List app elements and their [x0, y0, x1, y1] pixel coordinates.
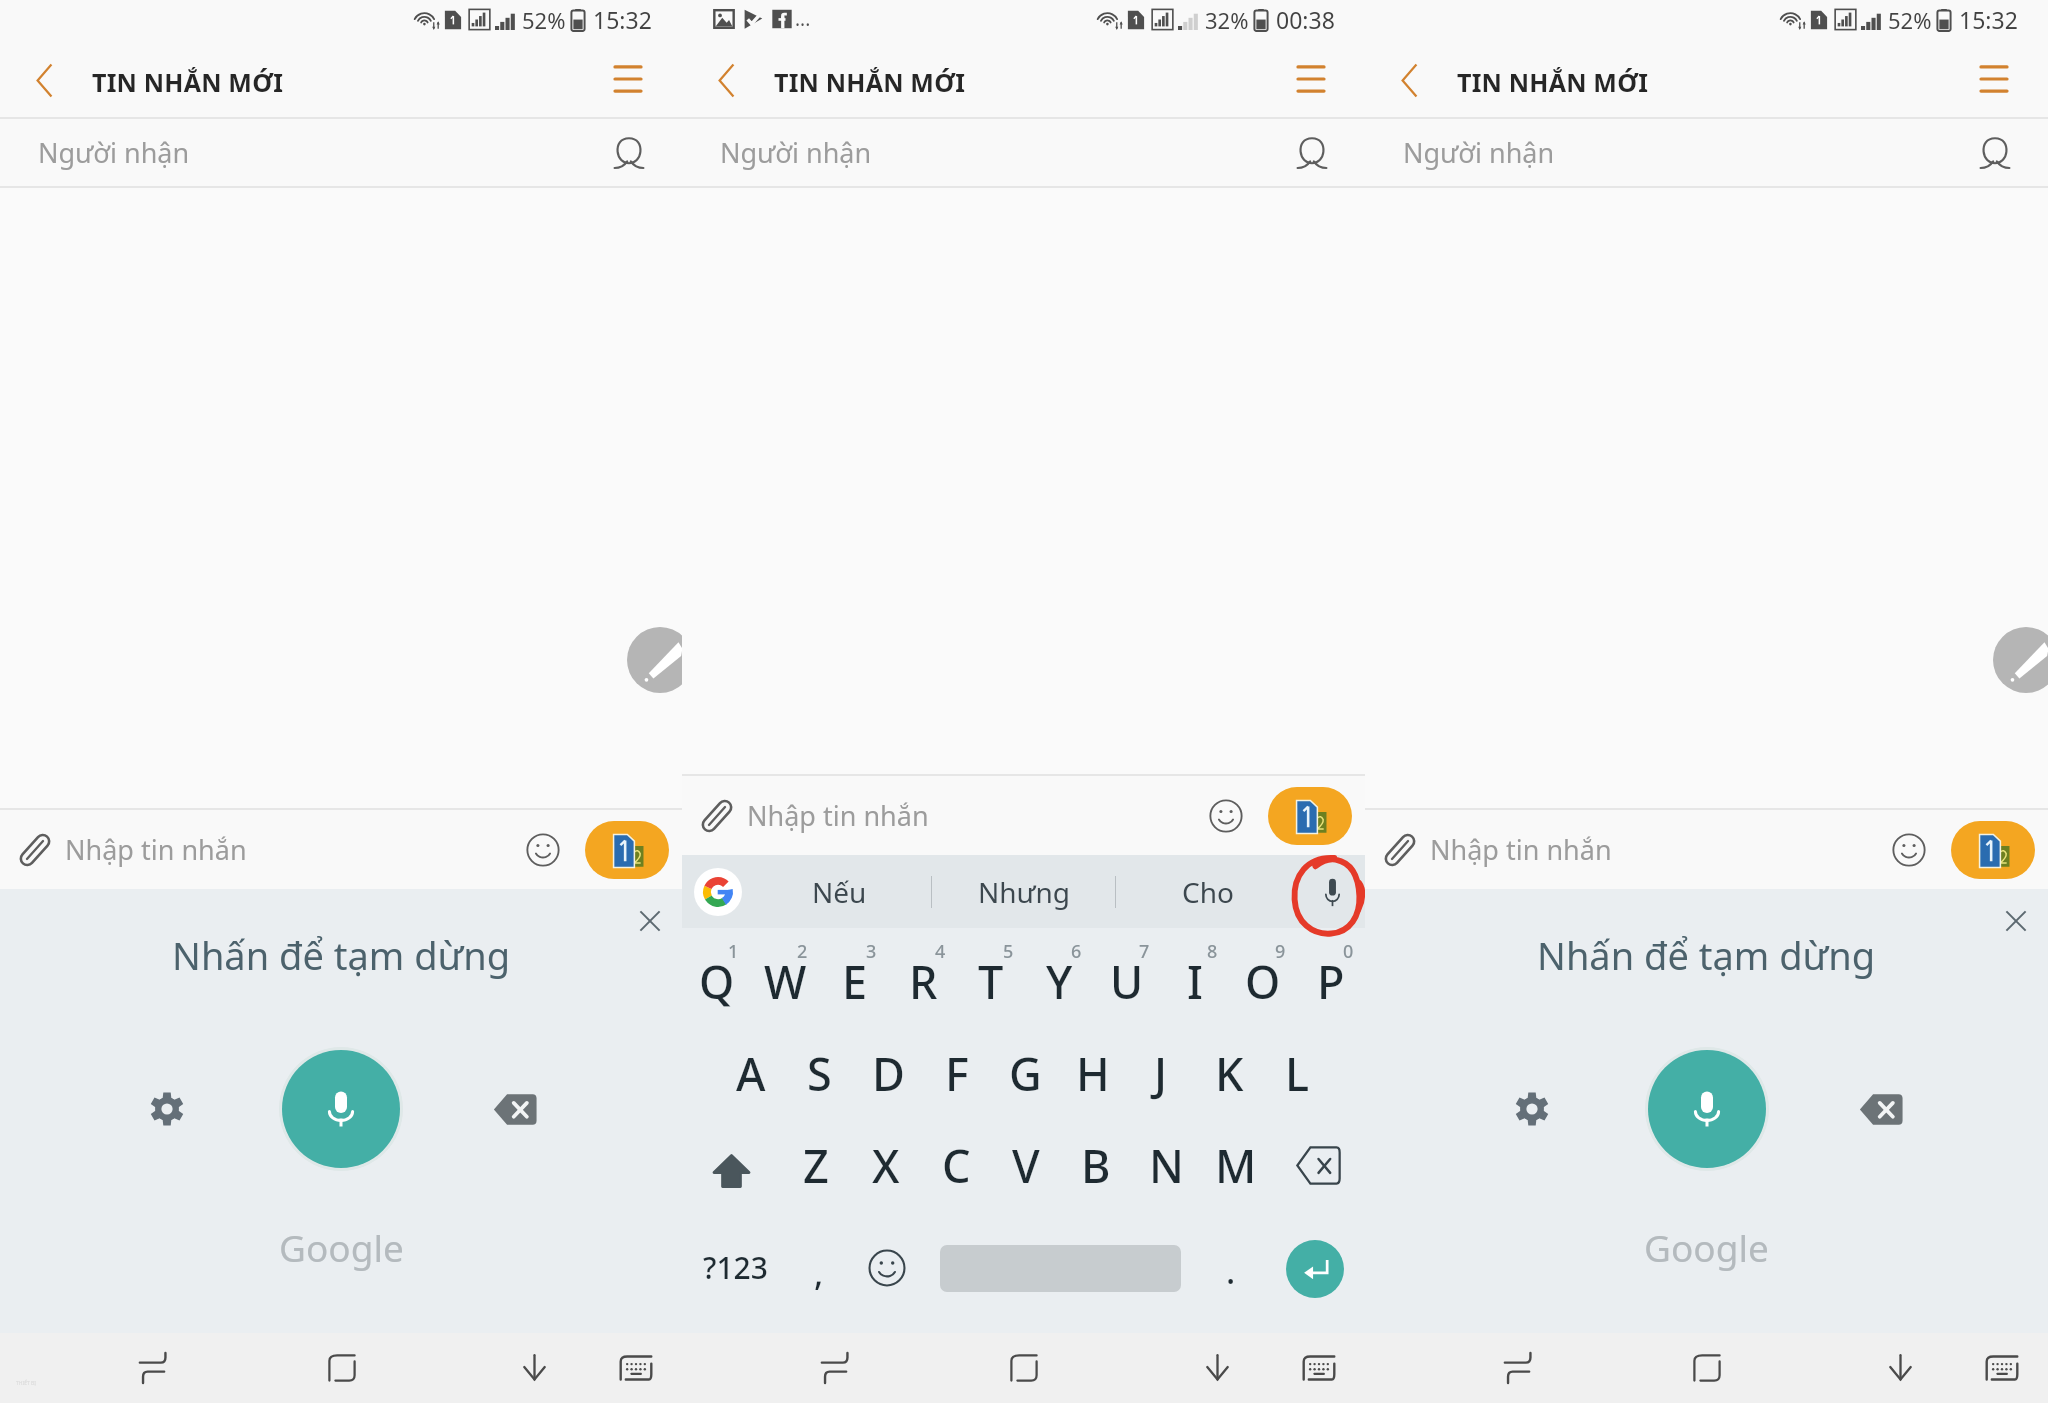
- button[interactable]: G: [991, 1027, 1059, 1119]
- staticText: X: [872, 1135, 900, 1196]
- button[interactable]: Keyboard: [1970, 1336, 2034, 1400]
- button[interactable]: Back: [18, 54, 70, 106]
- button[interactable]: B: [1061, 1119, 1131, 1211]
- button[interactable]: Emoji: [519, 826, 567, 874]
- button[interactable]: Back: [700, 54, 752, 106]
- button[interactable]: ,: [788, 1211, 850, 1303]
- button[interactable]: Google: [694, 868, 742, 916]
- button[interactable]: V: [991, 1119, 1061, 1211]
- button[interactable]: Select SIM: [1951, 821, 2035, 879]
- button[interactable]: T: [957, 935, 1025, 1027]
- button[interactable]: Z: [781, 1119, 851, 1211]
- button[interactable]: Close: [1990, 895, 2042, 947]
- button[interactable]: Recents: [682, 1333, 986, 1403]
- button[interactable]: Người nhận: [682, 119, 1365, 186]
- staticText: Nhưng: [978, 873, 1070, 911]
- staticText: Google: [279, 1222, 404, 1272]
- staticText: TIN NHẮN MỚI: [774, 65, 966, 99]
- button[interactable]: K: [1195, 1027, 1263, 1119]
- button[interactable]: Emoji: [1885, 826, 1933, 874]
- button[interactable]: Add recipient: [1288, 129, 1336, 177]
- button[interactable]: Select SIM: [585, 821, 669, 879]
- button[interactable]: Settings: [1504, 1081, 1560, 1137]
- staticText: V: [1012, 1135, 1040, 1196]
- button[interactable]: W: [751, 935, 820, 1027]
- staticText: P: [1317, 951, 1345, 1012]
- staticText: Nhập tin nhắn: [1430, 831, 1612, 868]
- button[interactable]: Space: [923, 1211, 1198, 1303]
- button[interactable]: Người nhận: [1365, 119, 2048, 186]
- button[interactable]: Recents: [1365, 1333, 1669, 1403]
- button[interactable]: N: [1131, 1119, 1201, 1211]
- button[interactable]: Hide keyboard: [1868, 1336, 1932, 1400]
- button[interactable]: ?123: [682, 1211, 788, 1303]
- staticText: Google: [1644, 1222, 1769, 1272]
- button[interactable]: Nếu: [748, 855, 931, 928]
- button[interactable]: Microphone: [279, 1047, 403, 1171]
- button[interactable]: Compose message: [1993, 627, 2048, 693]
- button[interactable]: M: [1201, 1119, 1271, 1211]
- button[interactable]: Hide keyboard: [1185, 1336, 1249, 1400]
- button[interactable]: Attach: [1, 816, 69, 884]
- button[interactable]: F: [923, 1027, 991, 1119]
- button[interactable]: R: [889, 935, 957, 1027]
- button[interactable]: More options: [602, 53, 654, 105]
- staticText: C: [942, 1135, 971, 1196]
- button[interactable]: Home: [1659, 1333, 1755, 1403]
- button[interactable]: H: [1059, 1027, 1127, 1119]
- button[interactable]: L: [1263, 1027, 1331, 1119]
- button[interactable]: Người nhận: [0, 119, 682, 186]
- button[interactable]: Emoji: [1202, 792, 1250, 840]
- button[interactable]: .: [1198, 1211, 1264, 1303]
- button[interactable]: I: [1161, 935, 1229, 1027]
- button[interactable]: Q: [682, 935, 751, 1027]
- button[interactable]: More options: [1968, 53, 2020, 105]
- button[interactable]: Hide keyboard: [502, 1336, 566, 1400]
- staticText: S: [807, 1043, 832, 1104]
- button[interactable]: Recents: [0, 1333, 303, 1403]
- button[interactable]: C: [921, 1119, 991, 1211]
- button[interactable]: O: [1229, 935, 1297, 1027]
- button[interactable]: Nhưng: [932, 855, 1115, 928]
- button[interactable]: Home: [294, 1333, 389, 1403]
- button[interactable]: Keyboard: [604, 1336, 668, 1400]
- button[interactable]: P: [1297, 935, 1365, 1027]
- button[interactable]: Enter: [1264, 1211, 1365, 1303]
- button[interactable]: Backspace: [1853, 1081, 1909, 1137]
- button[interactable]: U: [1093, 935, 1161, 1027]
- button[interactable]: Attach: [683, 782, 751, 850]
- button[interactable]: Compose message: [627, 627, 693, 693]
- button[interactable]: J: [1127, 1027, 1195, 1119]
- staticText: O: [1245, 951, 1281, 1012]
- staticText: E: [842, 951, 868, 1012]
- staticText: Nhấn để tạm dừng: [1537, 929, 1876, 981]
- staticText: Nhấn để tạm dừng: [172, 929, 511, 981]
- staticText: H: [1076, 1043, 1110, 1104]
- button[interactable]: Home: [976, 1333, 1072, 1403]
- button[interactable]: X: [851, 1119, 921, 1211]
- button[interactable]: More options: [1285, 53, 1337, 105]
- staticText: Nhập tin nhắn: [65, 831, 247, 868]
- button[interactable]: Attach: [1366, 816, 1434, 884]
- staticText: Người nhận: [1403, 134, 1555, 171]
- button[interactable]: D: [854, 1027, 923, 1119]
- button[interactable]: Cho: [1116, 855, 1299, 928]
- button[interactable]: Settings: [139, 1081, 195, 1137]
- button[interactable]: Add recipient: [1971, 129, 2019, 177]
- staticText: 52%: [1888, 5, 1932, 35]
- button[interactable]: Voice input: [1304, 864, 1360, 920]
- button[interactable]: Backspace: [487, 1081, 543, 1137]
- button[interactable]: Emoji: [850, 1211, 923, 1303]
- button[interactable]: Back: [1383, 54, 1435, 106]
- button[interactable]: S: [785, 1027, 854, 1119]
- button[interactable]: Select SIM: [1268, 787, 1352, 845]
- button[interactable]: Y: [1025, 935, 1093, 1027]
- button[interactable]: Add recipient: [605, 129, 653, 177]
- button[interactable]: Close: [624, 895, 676, 947]
- button[interactable]: Shift: [682, 1119, 781, 1211]
- button[interactable]: Keyboard: [1287, 1336, 1351, 1400]
- button[interactable]: A: [716, 1027, 785, 1119]
- button[interactable]: E: [820, 935, 889, 1027]
- button[interactable]: Backspace: [1271, 1119, 1365, 1211]
- button[interactable]: Microphone: [1645, 1047, 1769, 1171]
